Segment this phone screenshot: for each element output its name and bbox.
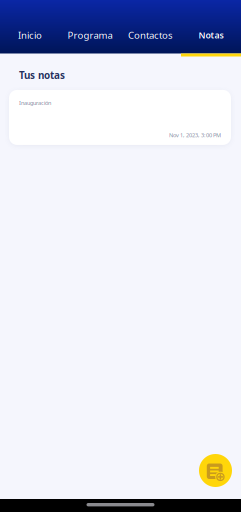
staticText: Inauguración	[19, 99, 51, 106]
staticText: Nov 1, 2023, 3:00 PM	[169, 131, 221, 139]
staticText: Programa	[67, 28, 112, 42]
button[interactable]: Inauguración	[9, 90, 231, 145]
staticText: Tus notas	[19, 68, 65, 82]
staticText: Inicio	[18, 28, 42, 42]
staticText: Notas	[198, 29, 223, 41]
button[interactable]: Notas	[181, 0, 241, 56]
button[interactable]: Contactos	[120, 0, 181, 56]
button[interactable]: Inicio	[0, 0, 60, 56]
button[interactable]: Programa	[60, 0, 120, 56]
button[interactable]: New note	[199, 454, 232, 487]
staticText: Contactos	[128, 28, 173, 42]
